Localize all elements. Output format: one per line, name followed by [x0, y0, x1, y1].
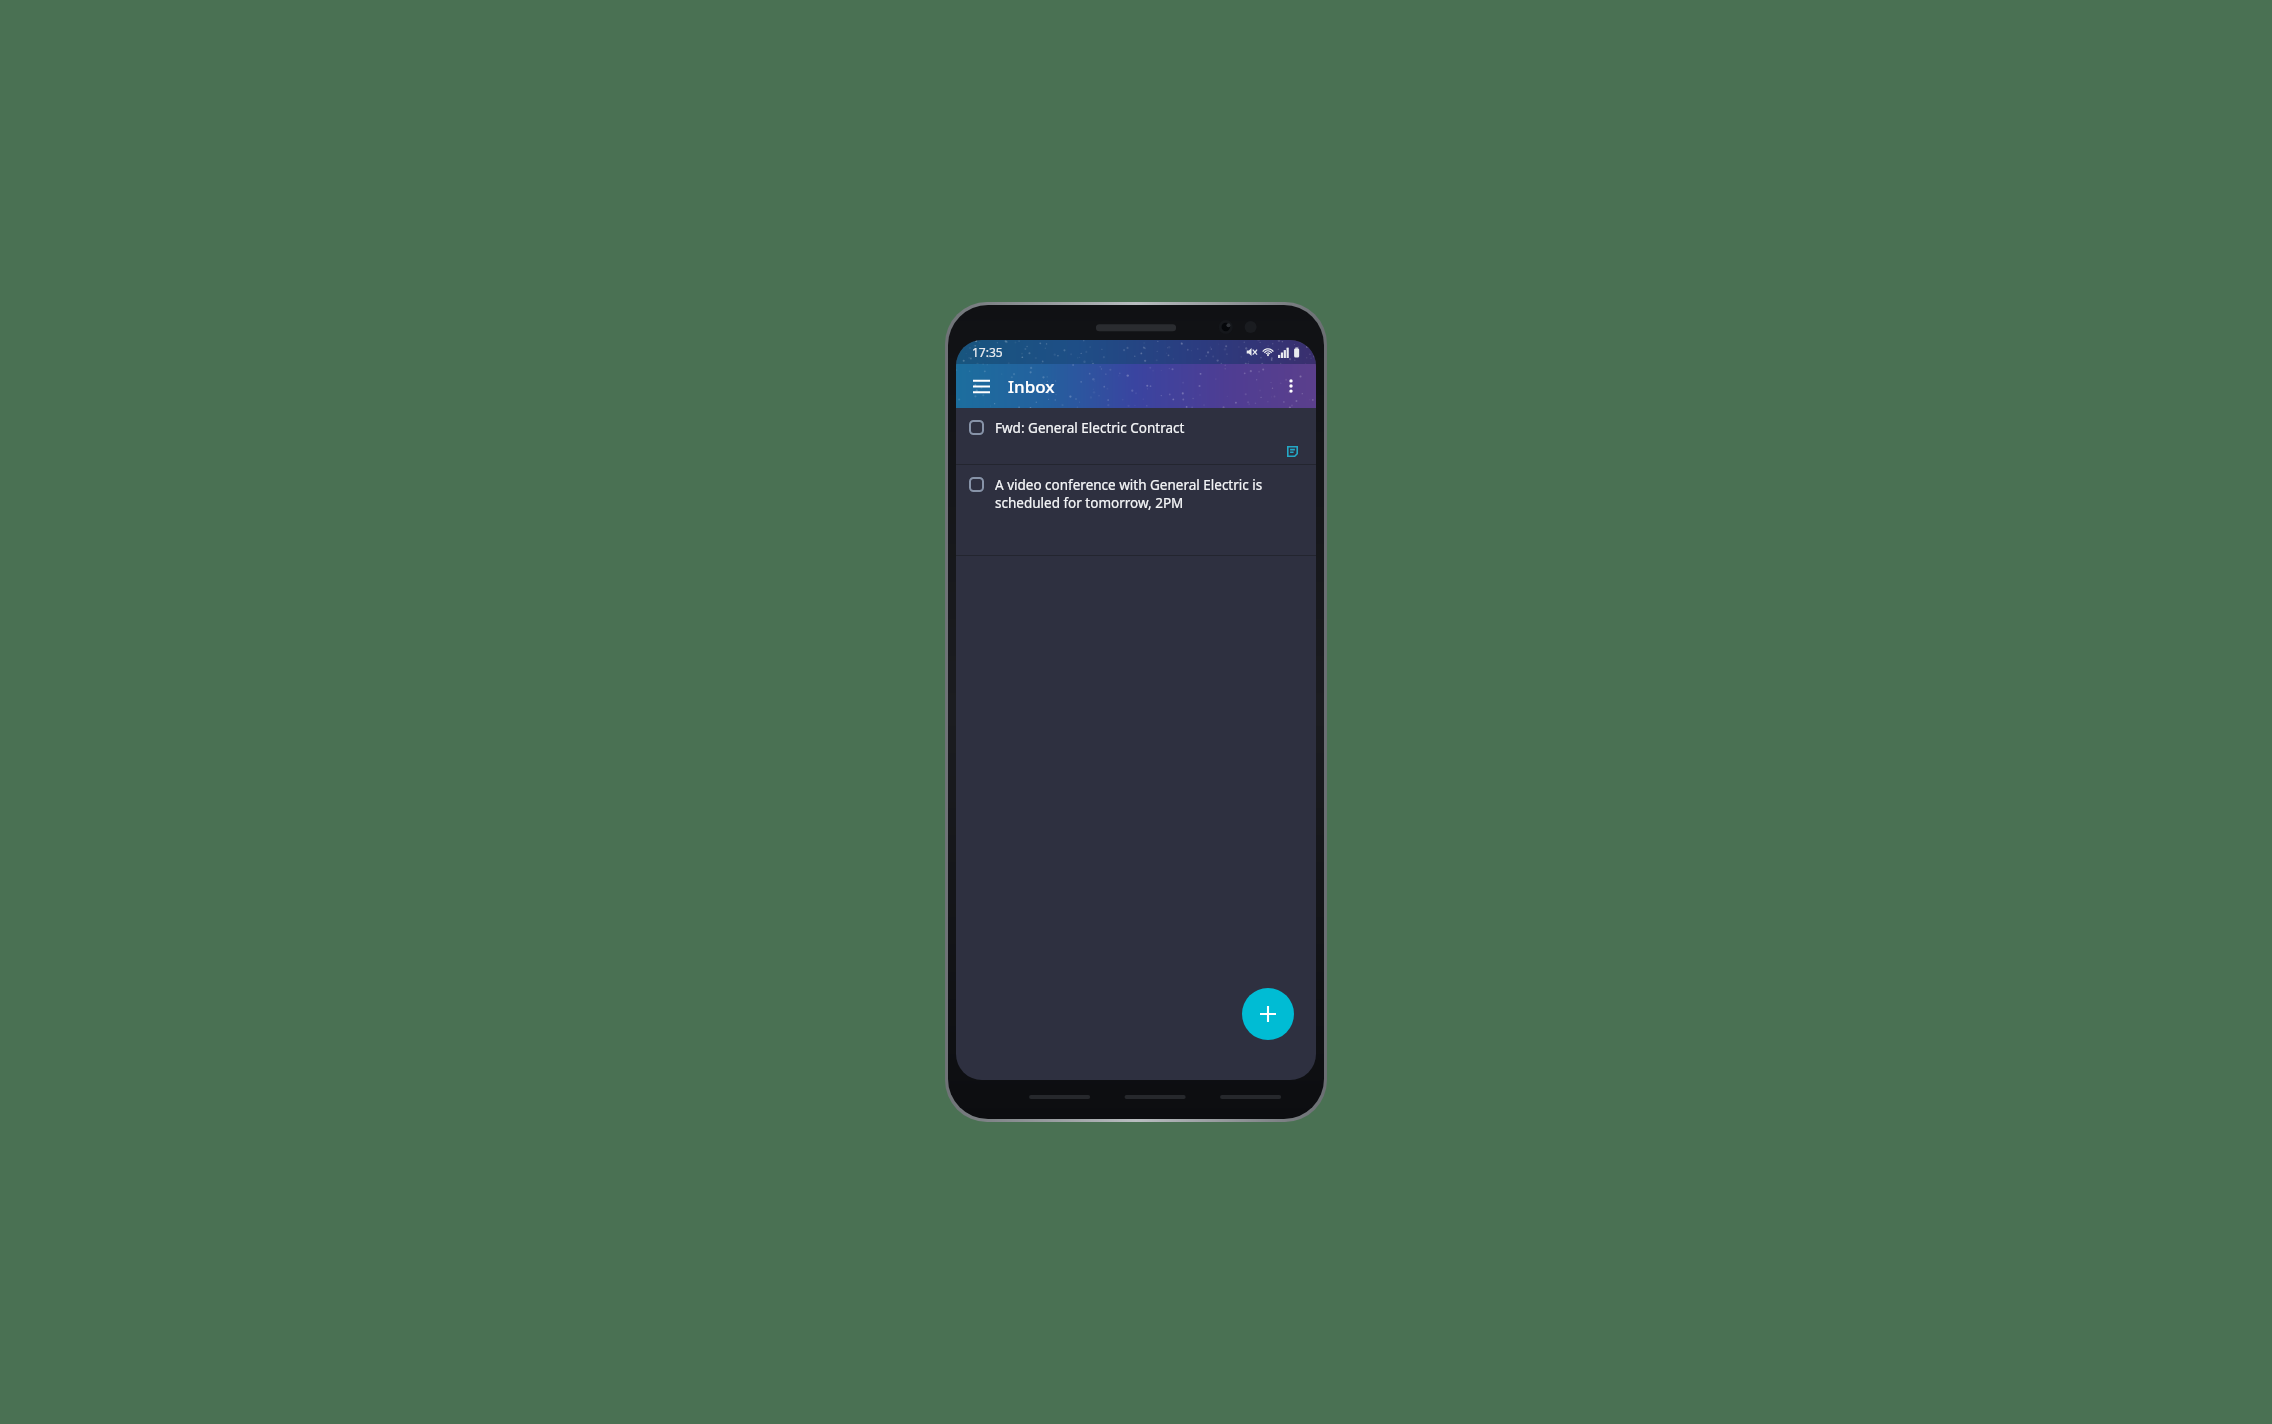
other: Select message [969, 420, 984, 435]
staticText: Fwd: General Electric Contract [995, 419, 1185, 437]
staticText: A video conference with General Electric… [995, 476, 1302, 512]
button[interactable]: More options [1272, 367, 1310, 405]
staticText: 17:35 [972, 344, 1003, 360]
button[interactable]: Open navigation menu [962, 367, 1000, 405]
button[interactable]: Select message [956, 465, 1316, 555]
button[interactable]: Compose new message [1242, 988, 1294, 1040]
other: Select message [969, 477, 984, 492]
staticText: Inbox [1008, 375, 1055, 398]
button[interactable]: Select message [956, 408, 1316, 464]
